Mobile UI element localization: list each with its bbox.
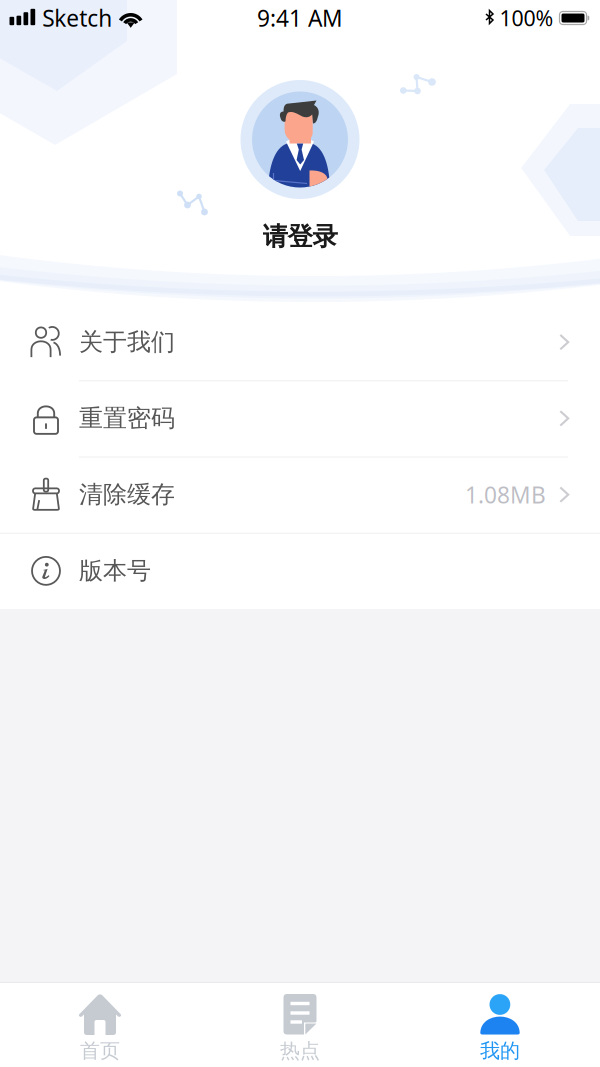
staticText: 重置密码 — [79, 404, 175, 433]
staticText: 9:41 AM — [257, 3, 343, 33]
button[interactable]: 版本号 — [0, 533, 600, 609]
button[interactable]: 热点 — [200, 982, 400, 1067]
staticText: 清除缓存 — [79, 480, 175, 509]
staticText: 1.08MB — [465, 480, 546, 510]
staticText: 关于我们 — [79, 327, 175, 357]
staticText: 100% — [499, 4, 553, 32]
staticText: Sketch — [42, 3, 112, 33]
button[interactable]: 我的 — [400, 982, 600, 1067]
staticText: 首页 — [80, 1038, 120, 1063]
staticText: 请登录 — [262, 221, 337, 252]
button[interactable]: 首页 — [0, 982, 200, 1067]
staticText: 热点 — [280, 1038, 320, 1063]
button[interactable]: 关于我们 — [0, 304, 600, 380]
button[interactable]: 重置密码 — [0, 380, 600, 456]
staticText: 我的 — [480, 1038, 520, 1063]
staticText: 版本号 — [79, 556, 151, 586]
button[interactable]: 清除缓存 — [0, 456, 600, 533]
